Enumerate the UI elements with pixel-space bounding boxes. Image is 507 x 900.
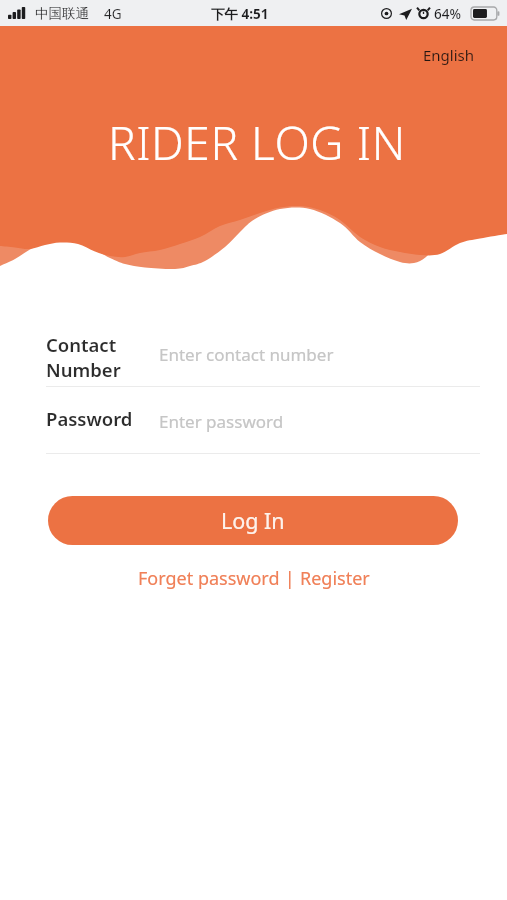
- staticText: English: [423, 45, 475, 65]
- staticText: Forget password: [138, 566, 280, 591]
- button[interactable]: English: [417, 42, 481, 68]
- staticText: Enter contact number: [159, 343, 334, 366]
- button[interactable]: Forget password: [138, 566, 280, 591]
- button[interactable]: Register: [300, 566, 370, 591]
- staticText: |: [280, 566, 300, 591]
- button[interactable]: Enter contact number: [159, 343, 334, 366]
- staticText: 中国联通: [35, 5, 89, 22]
- button[interactable]: Log In: [48, 496, 458, 545]
- staticText: 64%: [434, 5, 461, 23]
- staticText: Log In: [221, 506, 285, 535]
- staticText: RIDER LOG IN: [108, 111, 406, 174]
- staticText: Enter password: [159, 410, 284, 433]
- staticText: 4G: [104, 5, 122, 23]
- button[interactable]: Enter password: [159, 410, 284, 433]
- staticText: Number: [46, 357, 121, 382]
- staticText: 下午 4:51: [211, 5, 269, 23]
- staticText: Contact: [46, 332, 117, 357]
- staticText: Register: [300, 566, 370, 591]
- staticText: Password: [46, 406, 133, 431]
